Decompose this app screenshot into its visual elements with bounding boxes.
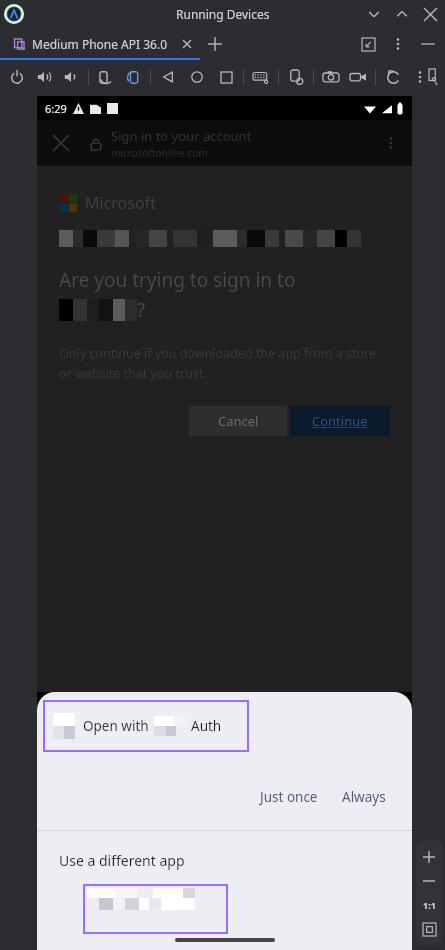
button[interactable]: Just once [252, 780, 326, 814]
staticText: 6:29 [45, 101, 67, 116]
staticText: Continue [312, 412, 368, 430]
button[interactable]: Volume down [62, 68, 80, 86]
button[interactable]: Minimize [419, 35, 437, 53]
staticText: Medium Phone API 36.0 [32, 36, 168, 52]
button[interactable]: Collapse [365, 5, 383, 23]
button[interactable]: Volume up [35, 68, 53, 86]
button[interactable]: Home [188, 68, 206, 86]
staticText: or website that you trust. [59, 365, 207, 382]
button[interactable]: More options [389, 35, 407, 53]
button[interactable]: Close [47, 129, 75, 157]
button[interactable]: Medium Phone API 36.0 [10, 32, 170, 56]
button[interactable]: Zoom out [417, 869, 441, 893]
button[interactable]: Inspect [429, 68, 437, 86]
button[interactable]: App option [83, 884, 228, 934]
button[interactable]: Hide [359, 35, 377, 53]
staticText: microsoftonline.com [111, 146, 208, 160]
button[interactable]: Undo [384, 68, 402, 86]
button[interactable]: Record screen [349, 68, 367, 86]
button[interactable]: Close [421, 5, 439, 23]
staticText: Running Devices [176, 6, 270, 22]
button[interactable]: Open with [43, 700, 249, 752]
button[interactable]: Always [334, 780, 394, 814]
button[interactable]: Device settings [287, 68, 305, 86]
staticText: ? [137, 297, 146, 323]
button[interactable]: Screenshot [322, 68, 340, 86]
button[interactable]: Close tab [178, 35, 196, 53]
button[interactable]: Zoom in [417, 845, 441, 869]
button[interactable]: Overview [217, 68, 235, 86]
button[interactable]: New tab [206, 35, 224, 53]
button[interactable]: Back [159, 68, 177, 86]
button[interactable]: Power [8, 68, 26, 86]
button[interactable]: More options [378, 130, 404, 156]
staticText: Only continue if you downloaded the app … [59, 345, 377, 362]
button[interactable]: More [411, 68, 429, 86]
staticText: Always [342, 788, 386, 806]
button[interactable]: Actual size [417, 893, 441, 917]
button[interactable]: Zoom to fit [417, 917, 441, 941]
staticText: 1:1 [423, 899, 436, 911]
button[interactable]: Continue [290, 406, 390, 436]
button[interactable]: Rotate right [124, 68, 142, 86]
button[interactable]: Cancel [189, 406, 287, 436]
staticText: Microsoft [85, 192, 156, 214]
staticText: Cancel [218, 412, 259, 430]
button[interactable]: Hardware input [252, 68, 270, 86]
staticText: Just once [260, 788, 318, 806]
staticText: Are you trying to sign in to [59, 267, 296, 293]
button[interactable]: Expand [393, 5, 411, 23]
staticText: Sign in to your account [111, 127, 252, 145]
button[interactable]: Rotate left [97, 68, 115, 86]
staticText: Auth [191, 717, 222, 735]
staticText: Open with [83, 717, 149, 735]
staticText: Use a different app [59, 851, 185, 870]
